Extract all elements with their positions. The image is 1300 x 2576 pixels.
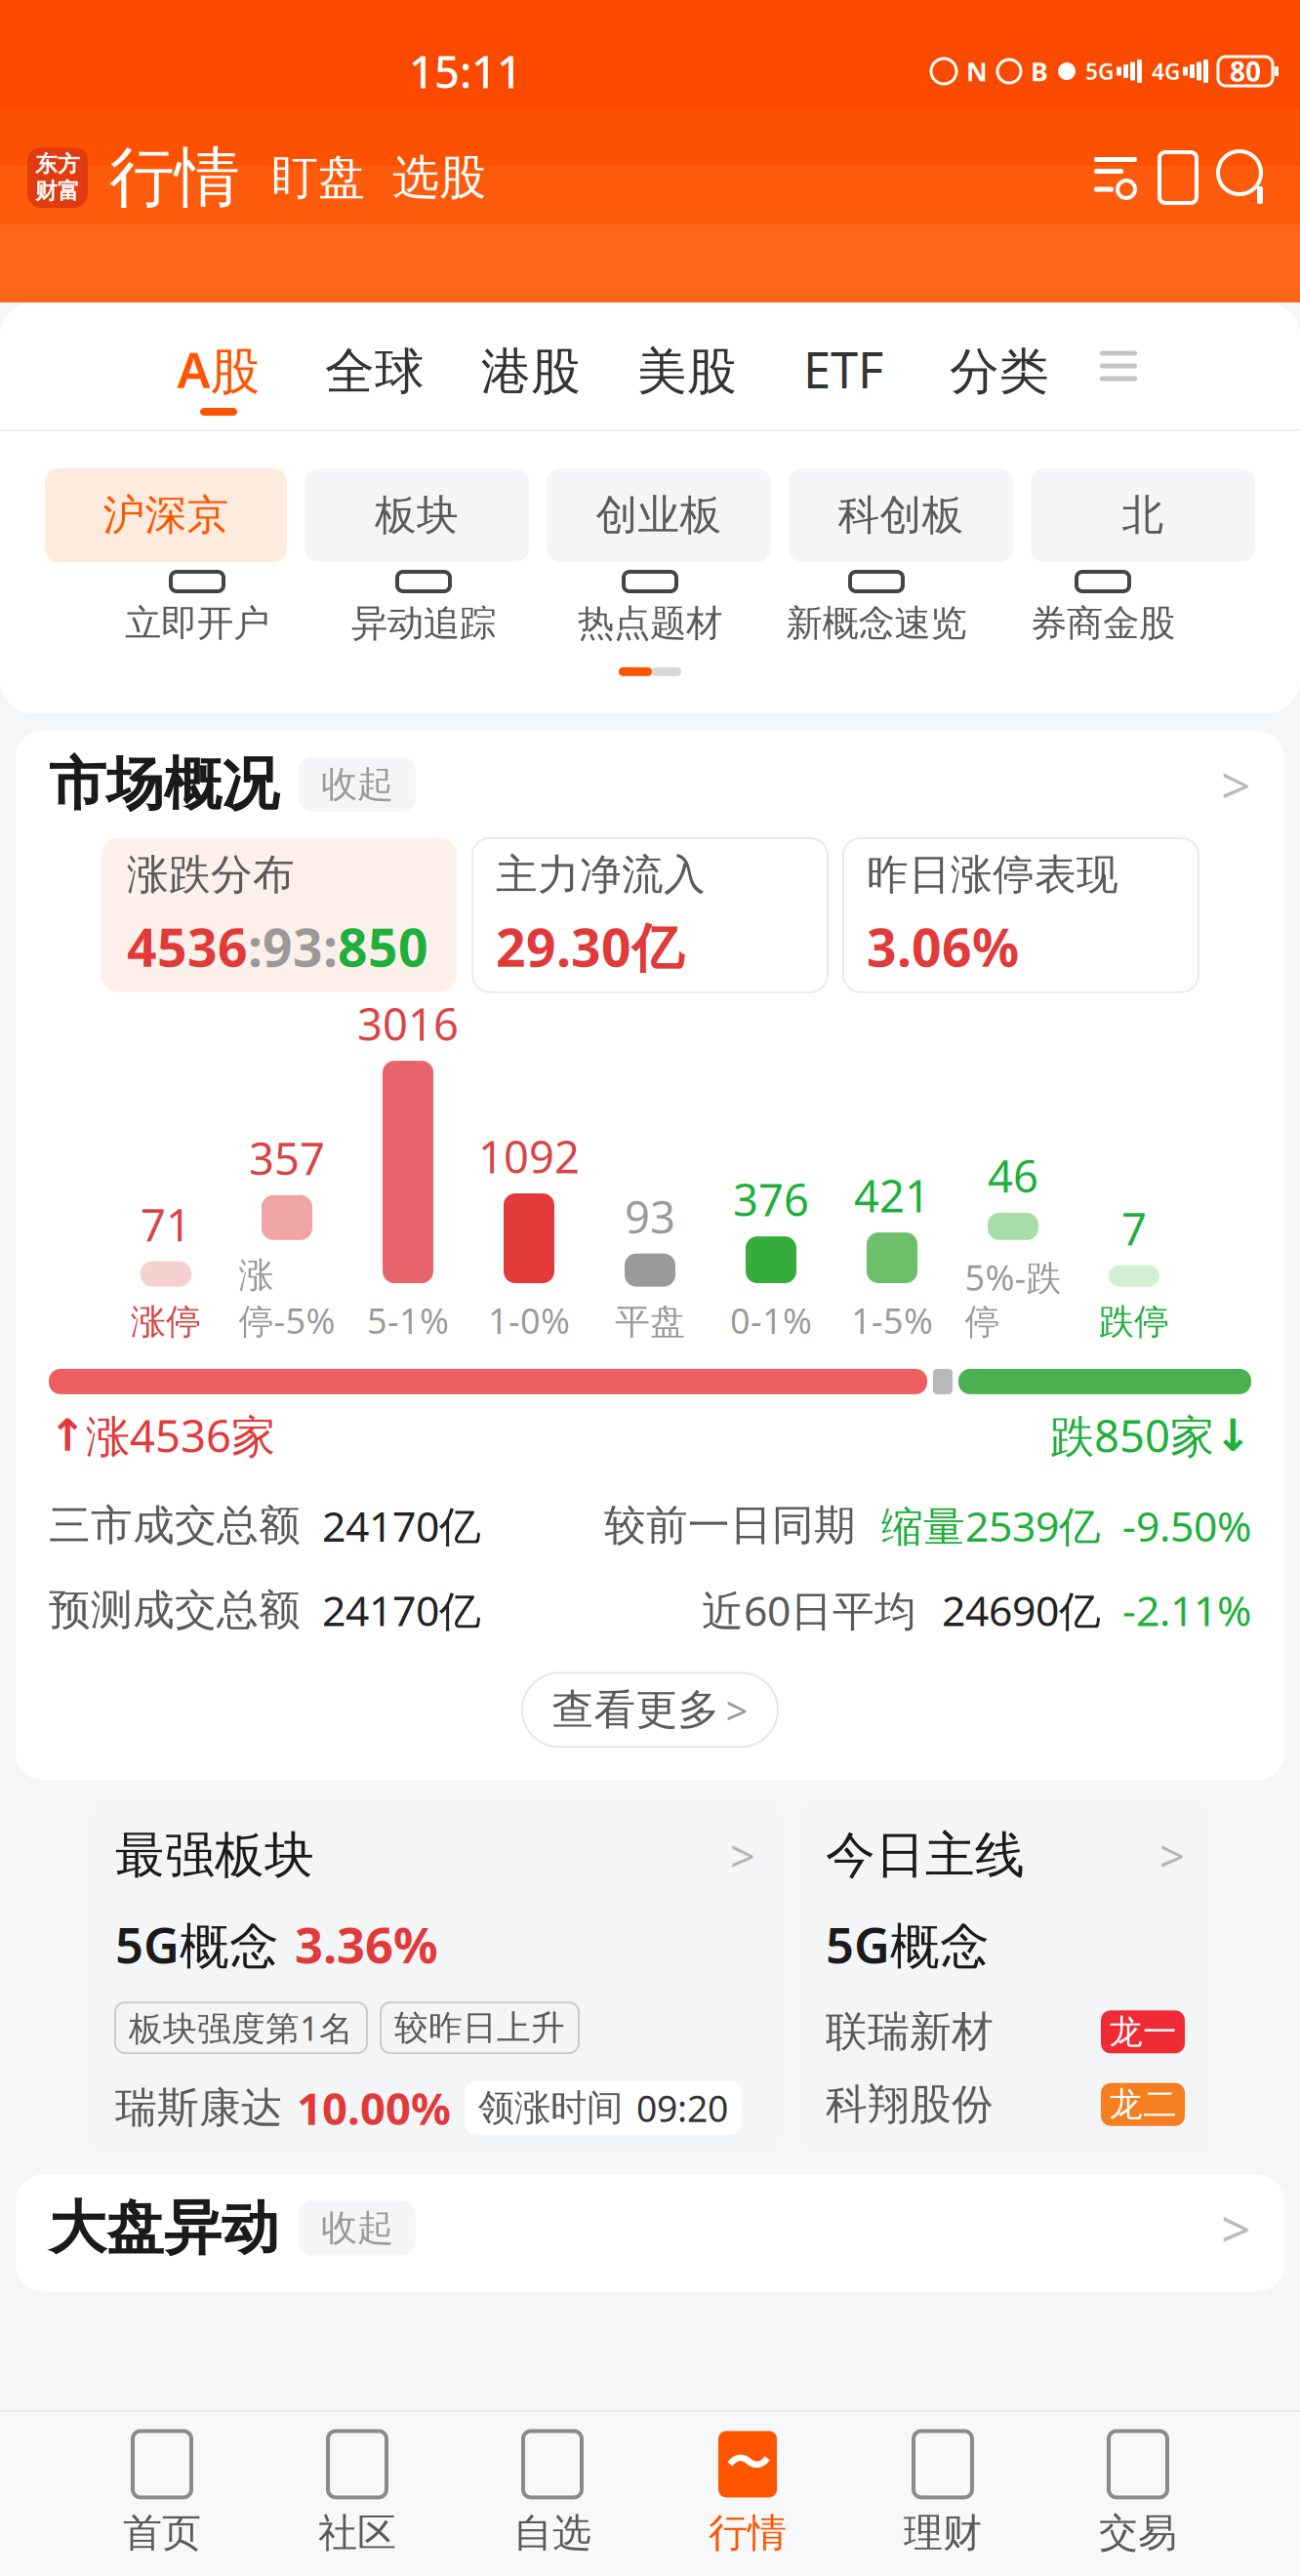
button[interactable]: 涨跌分布: [102, 838, 457, 992]
staticText: 421: [854, 1166, 930, 1225]
button[interactable]: 分类: [921, 302, 1077, 429]
staticText: 领涨时间: [478, 2085, 623, 2130]
staticText: 1-0%: [488, 1297, 570, 1343]
staticText: 7: [1121, 1199, 1147, 1257]
button[interactable]: ETF: [765, 302, 921, 429]
button[interactable]: 今日主线: [798, 1798, 1212, 2157]
button[interactable]: 查看更多: [522, 1673, 778, 1747]
staticText: 预测成交总额: [49, 1584, 301, 1636]
staticText: 异动追踪: [351, 601, 496, 646]
button[interactable]: 社区: [260, 2412, 455, 2576]
staticText: 涨停-5%: [239, 1254, 335, 1343]
button[interactable]: 搜索: [1210, 147, 1279, 208]
button[interactable]: 新概念速览: [763, 572, 990, 646]
staticText: 缩量2539亿: [881, 1498, 1101, 1553]
button[interactable]: 〜: [650, 2412, 845, 2576]
button[interactable]: 港股: [453, 302, 609, 429]
staticText: 29.30亿: [496, 912, 683, 981]
staticText: 选股: [392, 149, 486, 206]
staticText: 近60日平均: [702, 1582, 916, 1638]
button[interactable]: 异动追踪: [310, 572, 537, 646]
button[interactable]: 更多分类: [1077, 322, 1159, 410]
button[interactable]: 立即开户: [84, 572, 310, 646]
button[interactable]: 首页: [64, 2412, 260, 2576]
button[interactable]: 理财: [845, 2412, 1040, 2576]
staticText: 3.06%: [867, 912, 1019, 981]
staticText: 3.36%: [295, 1911, 438, 1977]
button[interactable]: 市场概况: [16, 731, 1284, 838]
staticText: 较前一日同期: [604, 1500, 856, 1551]
staticText: 5G概念: [115, 1911, 279, 1977]
staticText: 较昨日上升: [394, 2007, 565, 2049]
staticText: 46: [988, 1146, 1038, 1205]
staticText: 4G: [1152, 56, 1180, 86]
staticText: 涨跌分布: [127, 849, 295, 900]
button[interactable]: 北: [1031, 468, 1255, 562]
staticText: 5%-跌停: [965, 1254, 1061, 1343]
staticText: 立即开户: [125, 601, 269, 646]
staticText: 市场概况: [49, 749, 279, 820]
button[interactable]: 券商金股: [990, 572, 1216, 646]
button[interactable]: 自选: [455, 2412, 650, 2576]
button[interactable]: 最强板块: [88, 1798, 783, 2157]
staticText: 24690亿: [942, 1582, 1101, 1638]
staticText: 首页: [123, 2509, 201, 2557]
button[interactable]: 创业板: [547, 468, 771, 562]
staticText: 10.00%: [297, 2079, 451, 2137]
button[interactable]: 热点题材: [537, 572, 763, 646]
staticText: >: [726, 1684, 748, 1736]
staticText: 板块: [375, 490, 459, 541]
staticText: 港股: [481, 341, 581, 402]
staticText: >: [1221, 2194, 1251, 2263]
button[interactable]: 选股: [365, 149, 486, 206]
staticText: >: [730, 1826, 755, 1885]
staticText: 1-5%: [851, 1297, 933, 1343]
staticText: 沪深京: [103, 490, 229, 541]
staticText: ↑: [49, 1410, 86, 1460]
staticText: 大盘异动: [49, 2193, 279, 2263]
button[interactable]: 大盘异动: [16, 2174, 1284, 2282]
staticText: >: [1221, 750, 1251, 819]
staticText: 创业板: [596, 490, 722, 541]
staticText: ↓: [1214, 1410, 1251, 1460]
button[interactable]: 盯盘: [240, 149, 365, 206]
button[interactable]: 主力净流入: [472, 838, 828, 992]
staticText: 理财: [904, 2509, 982, 2557]
staticText: 查看更多: [552, 1684, 720, 1735]
staticText: 热点题材: [578, 601, 722, 646]
staticText: -9.50%: [1101, 1498, 1251, 1553]
button[interactable]: 交易: [1040, 2412, 1236, 2576]
staticText: 今日主线: [826, 1825, 1025, 1886]
button[interactable]: 设置: [1085, 147, 1146, 208]
staticText: 收起: [321, 762, 393, 807]
button[interactable]: 沪深京: [45, 468, 287, 562]
button[interactable]: 行情: [88, 138, 240, 218]
staticText: 收起: [321, 2206, 393, 2250]
staticText: 板块强度第1名: [129, 2005, 353, 2050]
button[interactable]: 东方财富: [27, 147, 88, 208]
staticText: 科创板: [838, 490, 964, 541]
button[interactable]: 分享: [1146, 147, 1210, 208]
staticText: 376: [733, 1170, 809, 1228]
staticText: 09:20: [636, 2084, 728, 2132]
staticText: 平盘: [615, 1300, 685, 1343]
staticText: 昨日涨停表现: [867, 849, 1118, 900]
button[interactable]: 昨日涨停表现: [843, 838, 1198, 992]
staticText: -2.11%: [1101, 1582, 1251, 1638]
staticText: 行情: [109, 138, 240, 218]
staticText: 5-1%: [367, 1297, 449, 1343]
button[interactable]: 美股: [609, 302, 765, 429]
staticText: 美股: [637, 341, 737, 402]
staticText: 357: [249, 1129, 325, 1187]
staticText: 跌停: [1099, 1300, 1169, 1343]
button[interactable]: A股: [141, 302, 297, 429]
staticText: 涨4536家: [86, 1406, 275, 1465]
staticText: 东方 财富: [35, 150, 80, 205]
staticText: 80: [1230, 53, 1261, 89]
button[interactable]: 板块: [305, 468, 529, 562]
staticText: 24170亿: [301, 1582, 481, 1638]
staticText: 15:11: [409, 42, 522, 101]
button[interactable]: 全球: [297, 302, 453, 429]
button[interactable]: 科创板: [789, 468, 1013, 562]
staticText: A股: [177, 336, 260, 402]
